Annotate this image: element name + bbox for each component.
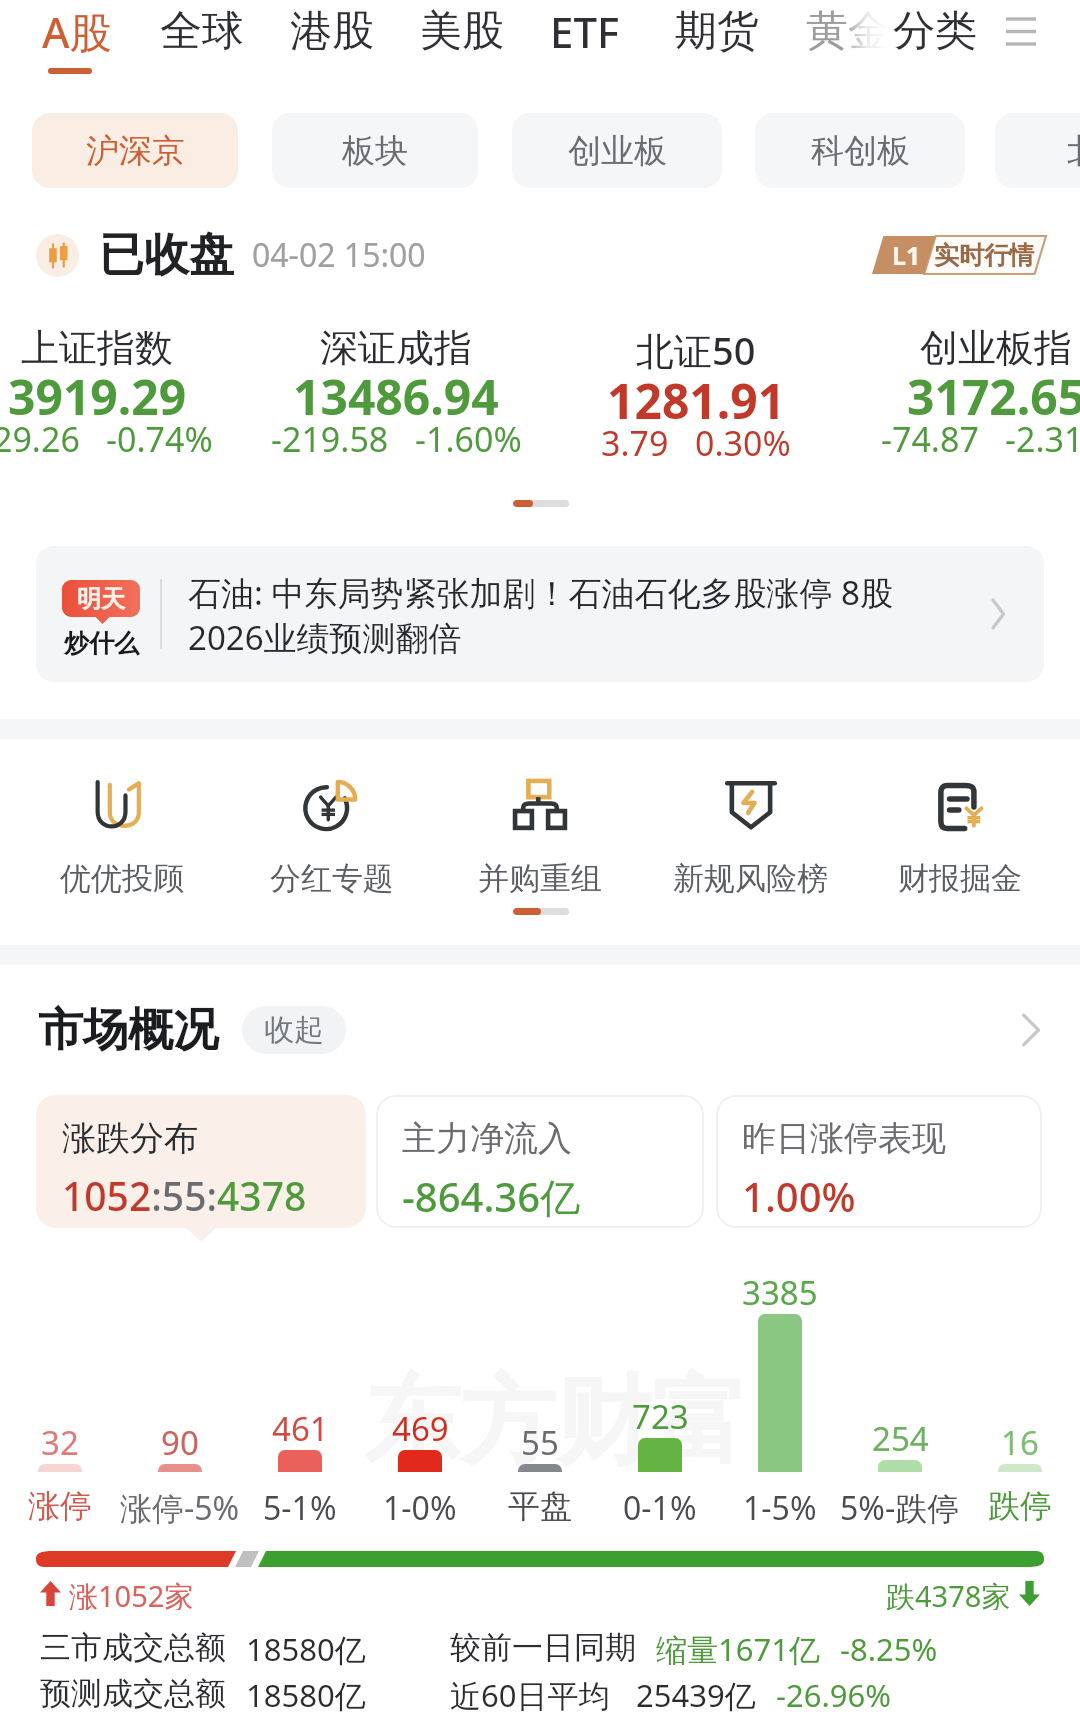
staticText: 0-1%: [623, 1486, 697, 1530]
button[interactable]: 涨跌分布: [36, 1095, 366, 1228]
staticText: 实时行情: [934, 240, 1034, 271]
button[interactable]: 723: [600, 1275, 720, 1525]
staticText: 北证50: [636, 324, 756, 376]
staticText: 创业板: [568, 130, 667, 172]
button[interactable]: 全球: [160, 0, 244, 62]
staticText: 18580亿: [246, 1628, 366, 1670]
staticText: -0.74%: [106, 416, 213, 462]
staticText: 涨1052家: [69, 1576, 194, 1610]
staticText: -219.58: [271, 416, 389, 462]
staticText: 涨停: [28, 1486, 92, 1526]
button[interactable]: A股: [42, 0, 112, 62]
staticText: 04-02 15:00: [252, 233, 426, 277]
staticText: 跌停: [988, 1486, 1052, 1526]
staticText: -26.96%: [776, 1674, 891, 1716]
button[interactable]: 创业板指: [846, 324, 1080, 483]
staticText: 优优投顾: [60, 859, 184, 898]
staticText: 3172.65: [907, 364, 1080, 429]
staticText: 3385: [742, 1270, 818, 1315]
staticText: 创业板指: [920, 324, 1072, 372]
button[interactable]: 北证50: [546, 324, 846, 487]
button[interactable]: 分类: [893, 0, 977, 62]
staticText: 461: [272, 1406, 329, 1451]
staticText: 明天: [77, 584, 125, 614]
staticText: 较前一日同期: [450, 1628, 636, 1667]
button[interactable]: 沪深京: [32, 113, 238, 188]
button[interactable]: 美股: [420, 0, 504, 62]
staticText: 并购重组: [478, 859, 602, 898]
button[interactable]: 32: [0, 1275, 120, 1525]
staticText: 469: [392, 1406, 449, 1451]
staticText: 三市成交总额: [40, 1628, 226, 1667]
button[interactable]: 明天: [36, 546, 1044, 682]
button[interactable]: 254: [840, 1275, 960, 1525]
staticText: 黄金: [806, 5, 890, 58]
button[interactable]: L1 实时行情: [872, 236, 1046, 274]
staticText: -29.26: [0, 416, 80, 462]
staticText: 沪深京: [86, 130, 185, 172]
staticText: 美股: [420, 5, 504, 58]
button[interactable]: 昨日涨停表现: [716, 1095, 1042, 1228]
staticText: 已收盘: [99, 227, 234, 284]
button[interactable]: 优优投顾: [17, 778, 227, 898]
button[interactable]: 收起: [242, 1006, 346, 1054]
staticText: 0.30%: [695, 420, 791, 466]
button[interactable]: 55: [480, 1275, 600, 1525]
staticText: L1: [892, 238, 921, 272]
staticText: 科创板: [811, 130, 910, 172]
staticText: 深证成指: [320, 324, 472, 372]
staticText: 5%-跌停: [840, 1486, 960, 1530]
button[interactable]: Menu: [1000, 0, 1042, 62]
staticText: 港股: [290, 5, 374, 58]
staticText: 1-5%: [743, 1486, 817, 1530]
staticText: 3919.29: [8, 364, 187, 429]
staticText: 市场概况: [38, 1002, 218, 1059]
staticText: 涨跌分布: [62, 1117, 198, 1160]
staticText: 723: [632, 1394, 689, 1439]
staticText: 18580亿: [246, 1674, 366, 1716]
staticText: 分红专题: [270, 859, 394, 898]
staticText: ETF: [550, 3, 620, 60]
button[interactable]: 深证成指: [246, 324, 546, 483]
staticText: 炒什么: [64, 628, 139, 659]
staticText: 分类: [893, 5, 977, 58]
other: Open: [978, 592, 1022, 636]
button[interactable]: 板块: [272, 113, 478, 188]
button[interactable]: 主力净流入: [376, 1095, 704, 1228]
staticText: 东方财富: [364, 1362, 748, 1483]
button[interactable]: 469: [360, 1275, 480, 1525]
staticText: 55: [521, 1420, 559, 1465]
button[interactable]: 上证指数: [0, 324, 247, 483]
staticText: 1052:55:4378: [62, 1169, 307, 1222]
staticText: 1-0%: [383, 1486, 457, 1530]
staticText: 90: [161, 1420, 199, 1465]
button[interactable]: ETF: [550, 0, 620, 62]
staticText: 254: [872, 1416, 929, 1461]
button[interactable]: 科创板: [755, 113, 965, 188]
staticText: 1281.91: [607, 368, 786, 433]
button[interactable]: 黄金: [806, 0, 890, 62]
staticText: 财报掘金: [898, 859, 1022, 898]
button[interactable]: More: [1006, 1008, 1050, 1052]
button[interactable]: 并购重组: [435, 778, 645, 898]
staticText: 昨日涨停表现: [742, 1117, 946, 1160]
button[interactable]: 新规风险榜: [645, 778, 855, 898]
button[interactable]: 90: [120, 1275, 240, 1525]
button[interactable]: 财报掘金: [855, 778, 1065, 898]
button[interactable]: 创业板: [512, 113, 722, 188]
staticText: 25439亿: [636, 1674, 756, 1716]
staticText: -74.87: [881, 416, 979, 462]
button[interactable]: 分红专题: [227, 778, 437, 898]
button[interactable]: 3385: [720, 1275, 840, 1525]
button[interactable]: 港股: [290, 0, 374, 62]
staticText: -8.25%: [840, 1628, 938, 1670]
staticText: 2026业绩预测翻倍: [188, 615, 462, 660]
staticText: 缩量1671亿: [656, 1628, 820, 1670]
button[interactable]: 期货: [675, 0, 759, 62]
button[interactable]: 461: [240, 1275, 360, 1525]
staticText: -864.36亿: [402, 1169, 581, 1224]
button[interactable]: 北证: [995, 113, 1080, 188]
button[interactable]: 16: [960, 1275, 1080, 1525]
staticText: -2.31%: [1005, 416, 1080, 462]
staticText: 13486.94: [293, 364, 499, 429]
